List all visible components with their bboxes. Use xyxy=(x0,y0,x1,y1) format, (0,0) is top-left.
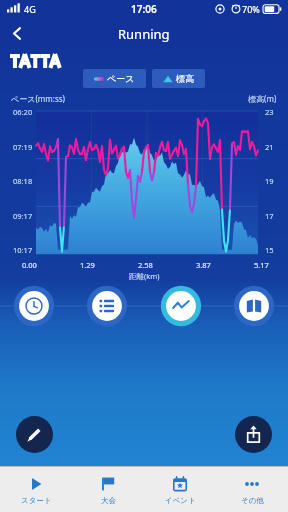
button[interactable]: Map xyxy=(233,285,275,327)
staticText: 07:19 xyxy=(13,142,33,152)
staticText: 2.58 xyxy=(138,260,153,270)
staticText: 23 xyxy=(265,107,274,117)
staticText: イベント xyxy=(165,496,196,505)
staticText: 0.00 xyxy=(22,260,37,270)
button[interactable]: 標高 xyxy=(152,69,205,88)
staticText: 70% xyxy=(242,3,260,15)
staticText: 4G xyxy=(24,3,36,15)
staticText: ペース(mm:ss) xyxy=(11,93,65,104)
button[interactable]: その他 xyxy=(216,467,288,512)
staticText: 15 xyxy=(265,245,274,255)
staticText: Running xyxy=(118,25,170,43)
staticText: 大会 xyxy=(101,496,116,505)
button[interactable]: Edit xyxy=(16,416,53,453)
staticText: 17:06 xyxy=(131,2,157,16)
staticText: 08:18 xyxy=(13,176,33,186)
button[interactable]: イベント xyxy=(144,467,216,512)
button[interactable]: Splits xyxy=(86,285,128,327)
button[interactable]: スタート xyxy=(0,467,72,512)
staticText: 距離(km) xyxy=(129,271,160,281)
staticText: 06:20 xyxy=(13,107,33,117)
staticText: 1.29 xyxy=(80,260,95,270)
staticText: 17 xyxy=(265,211,274,221)
button[interactable]: Summary xyxy=(13,285,55,327)
button[interactable]: Graph xyxy=(160,285,202,327)
staticText: 10:17 xyxy=(13,245,33,255)
button[interactable]: 大会 xyxy=(72,467,144,512)
staticText: 21 xyxy=(265,142,274,152)
staticText: ペース xyxy=(107,73,135,84)
staticText: 標高(m) xyxy=(248,93,277,104)
button[interactable]: Back xyxy=(0,18,34,49)
staticText: 標高 xyxy=(176,73,194,84)
staticText: 09:17 xyxy=(13,211,33,221)
staticText: その他 xyxy=(241,496,264,505)
button[interactable]: Share xyxy=(235,416,272,453)
staticText: 5.17 xyxy=(254,260,269,270)
staticText: スタート xyxy=(21,496,52,505)
button[interactable]: ペース xyxy=(83,69,146,88)
staticText: 19 xyxy=(265,176,274,186)
staticText: 3.87 xyxy=(196,260,211,270)
